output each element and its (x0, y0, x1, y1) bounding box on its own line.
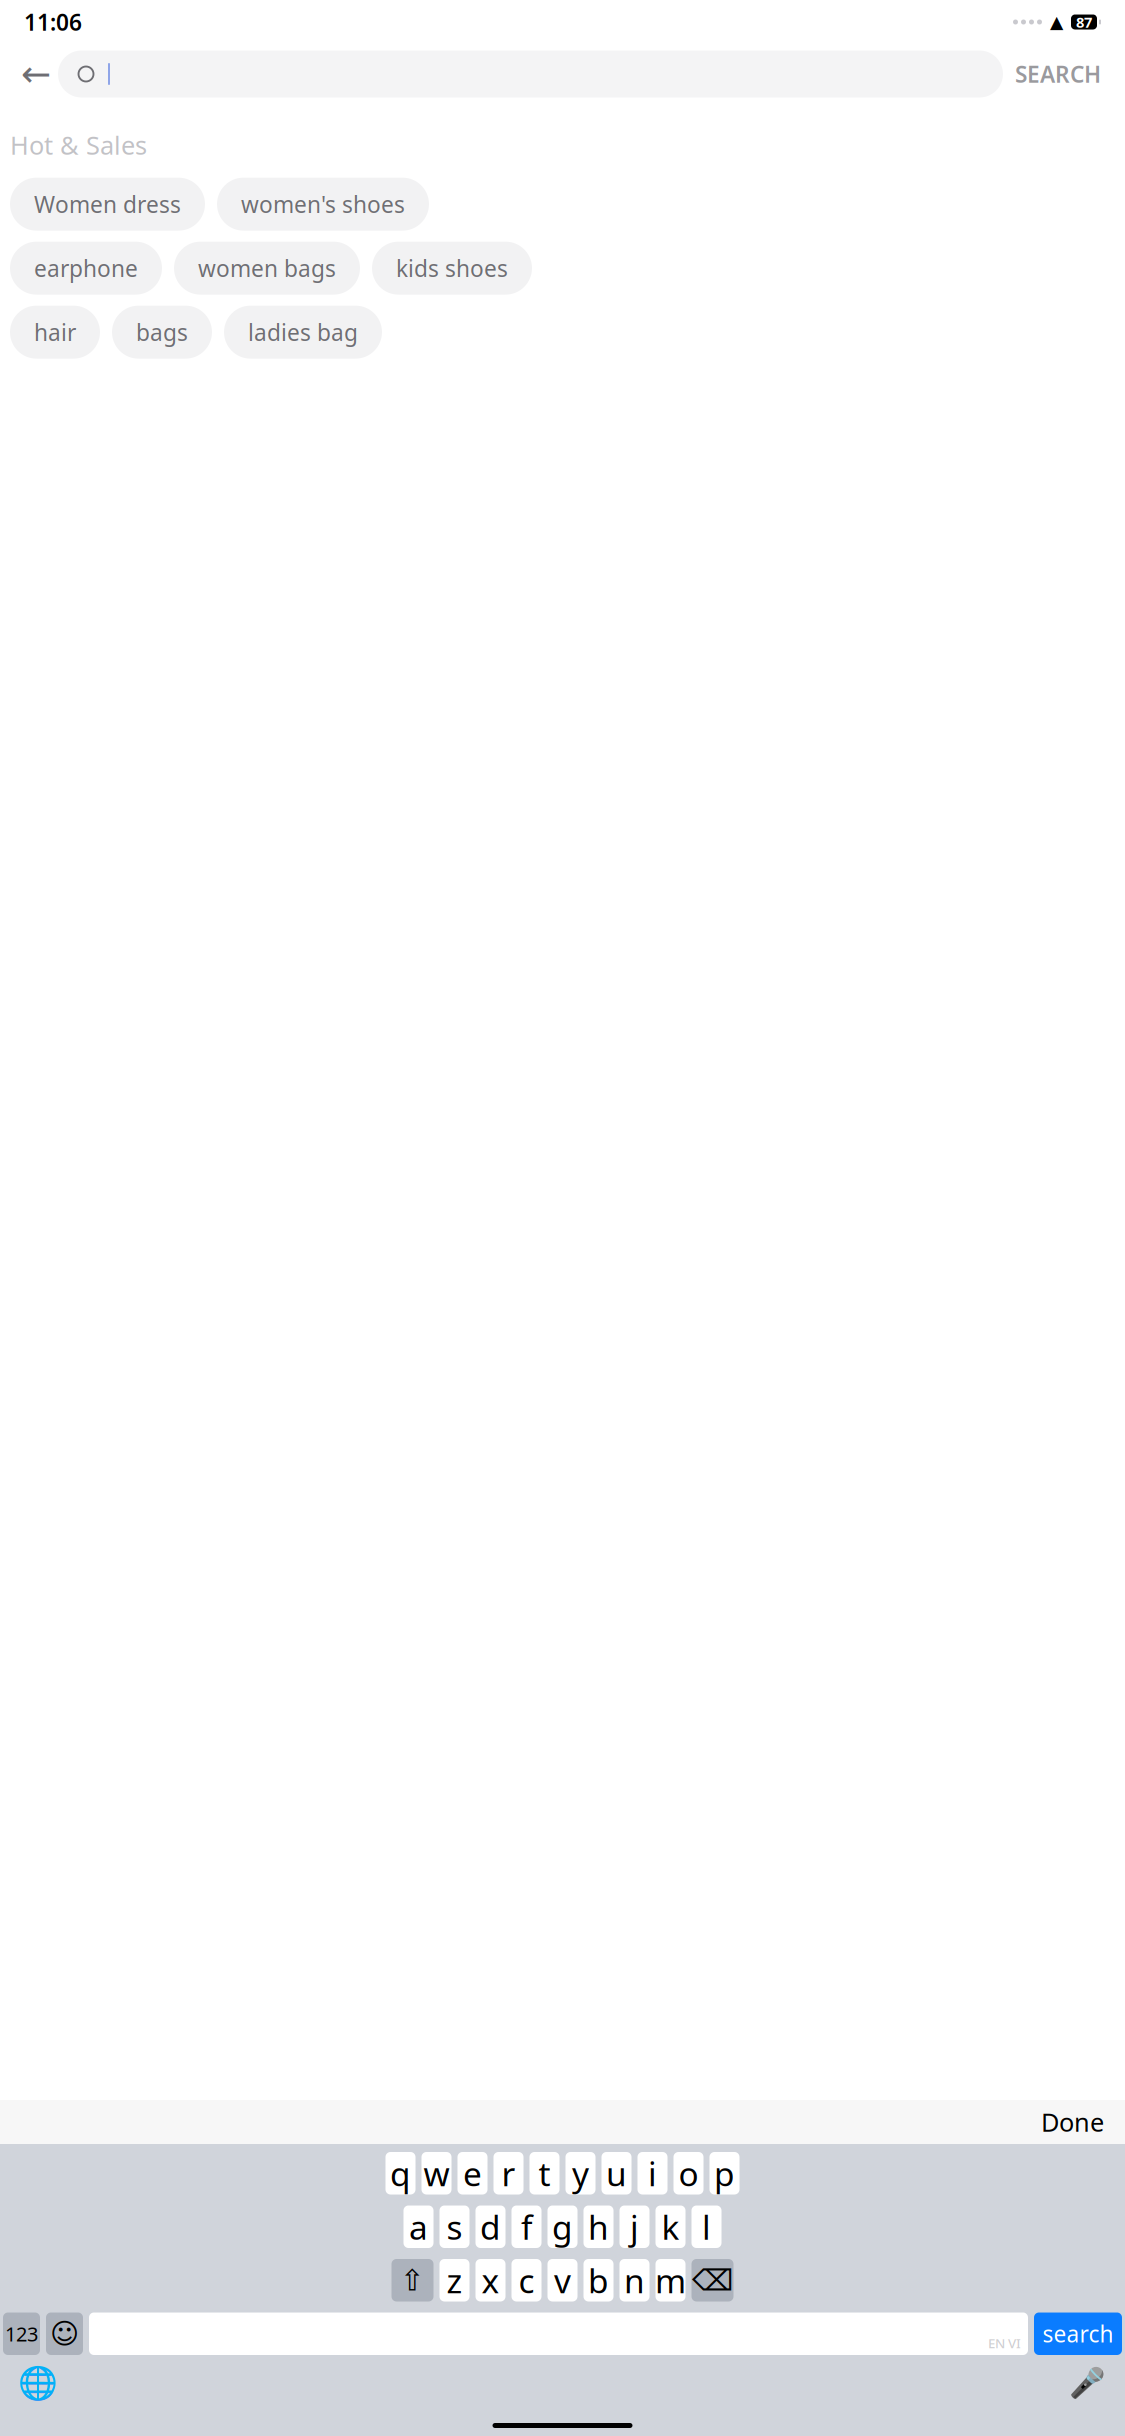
button[interactable]: Delete (691, 2259, 733, 2301)
staticText: earphone (34, 253, 138, 283)
button[interactable]: earphone (10, 242, 162, 295)
staticText: e (463, 2151, 482, 2195)
staticText: n (624, 2258, 645, 2302)
button[interactable]: space (89, 2312, 1028, 2355)
button[interactable]: e (457, 2152, 487, 2194)
staticText: 🌐 (18, 2365, 58, 2401)
staticText: 87 (1076, 12, 1092, 32)
staticText: q (390, 2151, 411, 2195)
staticText: search (1042, 2319, 1113, 2349)
button[interactable]: h (583, 2205, 613, 2248)
staticText: y (572, 2151, 589, 2195)
button[interactable]: u (601, 2152, 631, 2194)
button[interactable]: y (565, 2152, 595, 2194)
staticText: b (588, 2258, 609, 2302)
button[interactable]: d (475, 2205, 505, 2248)
staticText: hair (34, 317, 76, 347)
button[interactable]: c (511, 2259, 541, 2301)
button[interactable]: p (709, 2152, 739, 2194)
button[interactable]: n (619, 2259, 649, 2301)
staticText: EN VI (988, 2334, 1021, 2352)
button[interactable]: q (385, 2152, 415, 2194)
staticText: t (538, 2151, 550, 2195)
button[interactable]: SEARCH (1003, 52, 1113, 96)
staticText: k (661, 2205, 679, 2249)
staticText: v (554, 2258, 571, 2302)
staticText: h (588, 2205, 609, 2249)
button[interactable]: j (619, 2205, 649, 2248)
button[interactable]: g (547, 2205, 577, 2248)
button[interactable]: Women dress (10, 178, 205, 231)
staticText: u (606, 2151, 627, 2195)
button[interactable]: Emoji (46, 2312, 83, 2355)
staticText: SEARCH (1015, 59, 1101, 89)
button[interactable]: o (673, 2152, 703, 2194)
staticText: m (655, 2258, 686, 2302)
staticText: x (481, 2258, 499, 2302)
button[interactable]: x (475, 2259, 505, 2301)
staticText: w (423, 2151, 449, 2195)
button[interactable]: z (439, 2259, 469, 2301)
staticText: kids shoes (396, 253, 508, 283)
staticText: d (480, 2205, 501, 2249)
button[interactable]: b (583, 2259, 613, 2301)
button[interactable]: bags (112, 306, 212, 359)
staticText: ☺ (50, 2318, 79, 2350)
staticText: f (521, 2205, 532, 2249)
button[interactable]: f (511, 2205, 541, 2248)
button[interactable]: kids shoes (372, 242, 532, 295)
staticText: women bags (198, 253, 336, 283)
staticText: ⇧ (400, 2264, 425, 2297)
button[interactable]: s (439, 2205, 469, 2248)
button[interactable]: w (421, 2152, 451, 2194)
button[interactable] (58, 50, 1003, 97)
button[interactable]: l (691, 2205, 721, 2248)
staticText: bags (136, 317, 188, 347)
staticText: ⌫ (692, 2264, 733, 2297)
staticText: 🎤 (1068, 2366, 1105, 2400)
button[interactable]: hair (10, 306, 100, 359)
button[interactable]: search (1034, 2312, 1122, 2355)
button[interactable]: Numbers (3, 2312, 40, 2355)
staticText: j (630, 2205, 639, 2249)
staticText: r (501, 2151, 515, 2195)
staticText: g (552, 2205, 573, 2249)
staticText: ladies bag (248, 317, 358, 347)
button[interactable]: a (403, 2205, 433, 2248)
staticText: i (648, 2151, 657, 2195)
staticText: p (714, 2151, 735, 2195)
staticText: s (446, 2205, 462, 2249)
staticText: 123 (5, 2320, 38, 2347)
staticText: Women dress (34, 189, 181, 219)
button[interactable]: r (493, 2152, 523, 2194)
button[interactable]: Shift (391, 2259, 433, 2301)
button[interactable]: t (529, 2152, 559, 2194)
button[interactable]: Dictate (1063, 2361, 1111, 2405)
button[interactable]: ladies bag (224, 306, 382, 359)
button[interactable]: women's shoes (217, 178, 429, 231)
staticText: ← (21, 54, 51, 94)
staticText: o (678, 2151, 698, 2195)
staticText: Done (1041, 2105, 1104, 2139)
staticText: z (446, 2258, 462, 2302)
staticText: ▲ (1050, 12, 1063, 32)
staticText: a (409, 2205, 428, 2249)
staticText: l (702, 2205, 711, 2249)
staticText: c (518, 2258, 534, 2302)
button[interactable]: m (655, 2259, 685, 2301)
button[interactable]: Done (1027, 2100, 1118, 2144)
button[interactable]: v (547, 2259, 577, 2301)
button[interactable]: women bags (174, 242, 360, 295)
button[interactable]: k (655, 2205, 685, 2248)
staticText: Hot & Sales (10, 128, 147, 162)
staticText: women's shoes (241, 189, 405, 219)
staticText: 11:06 (24, 7, 82, 37)
button[interactable]: i (637, 2152, 667, 2194)
button[interactable]: Back (14, 52, 58, 96)
button[interactable]: Next keyboard (14, 2361, 62, 2405)
